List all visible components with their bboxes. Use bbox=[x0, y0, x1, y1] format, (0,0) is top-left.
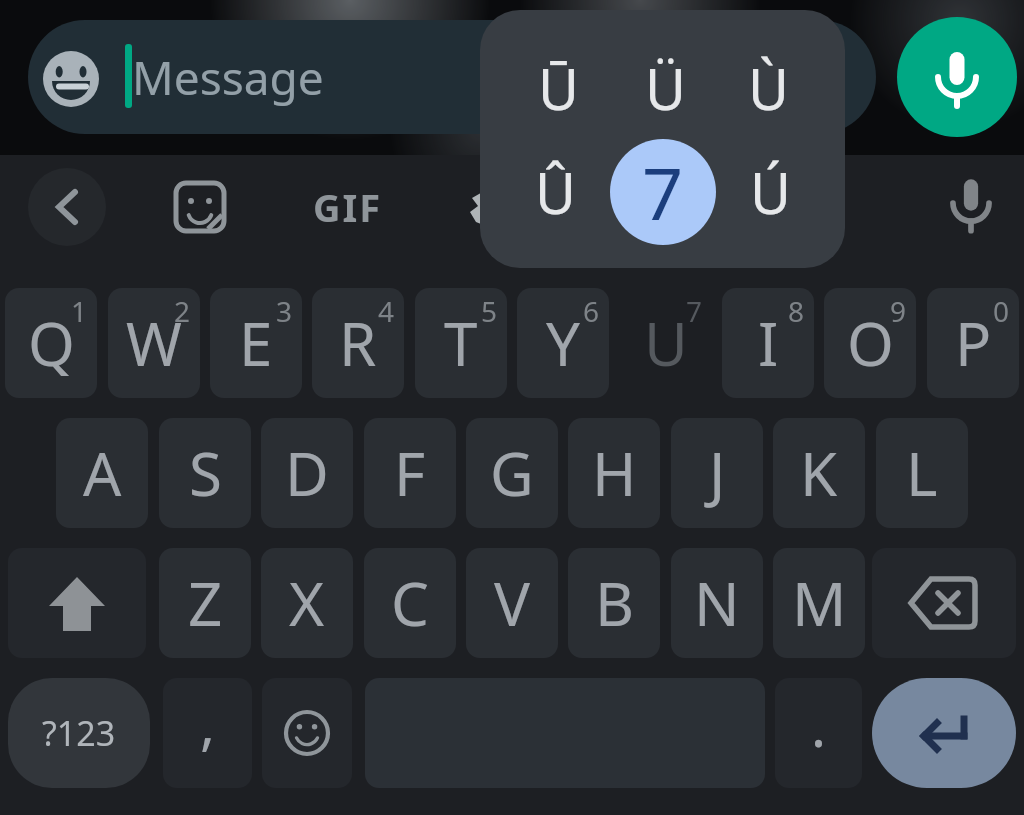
button[interactable]: Ú bbox=[730, 142, 810, 242]
staticText: N bbox=[694, 562, 740, 644]
staticText: K bbox=[800, 432, 838, 514]
button[interactable] bbox=[872, 678, 1016, 788]
staticText: 0 bbox=[993, 292, 1010, 330]
button[interactable]: B bbox=[568, 548, 660, 658]
button[interactable]: X bbox=[261, 548, 353, 658]
button[interactable] bbox=[872, 548, 1016, 658]
button[interactable] bbox=[931, 167, 1011, 247]
staticText: C bbox=[391, 562, 429, 644]
button[interactable]: S bbox=[159, 418, 251, 528]
button[interactable]: H bbox=[568, 418, 660, 528]
staticText: Û bbox=[535, 154, 576, 230]
staticText: H bbox=[592, 432, 637, 514]
staticText: G bbox=[490, 432, 534, 514]
staticText: V bbox=[494, 562, 530, 644]
button[interactable] bbox=[8, 548, 146, 658]
button[interactable]: T bbox=[415, 288, 507, 398]
button[interactable] bbox=[28, 168, 106, 246]
button[interactable]: K bbox=[773, 418, 865, 528]
button[interactable]: ?123 bbox=[8, 678, 150, 788]
button[interactable]: P bbox=[927, 288, 1019, 398]
button[interactable]: U bbox=[620, 288, 712, 398]
button[interactable]: L bbox=[876, 418, 968, 528]
button[interactable]: J bbox=[671, 418, 763, 528]
staticText: R bbox=[339, 302, 377, 384]
button[interactable]: C bbox=[364, 548, 456, 658]
button[interactable]: 7 bbox=[610, 139, 716, 245]
staticText: Ü bbox=[645, 50, 686, 126]
staticText: L bbox=[906, 432, 938, 514]
staticText: Ū bbox=[538, 50, 579, 126]
button[interactable]: , bbox=[163, 678, 252, 788]
button[interactable]: Y bbox=[517, 288, 609, 398]
button[interactable]: Û bbox=[515, 142, 595, 242]
staticText: 6 bbox=[583, 292, 600, 330]
button[interactable]: Q bbox=[5, 288, 97, 398]
button[interactable]: Ù bbox=[728, 38, 808, 138]
button[interactable]: Z bbox=[159, 548, 251, 658]
staticText: P bbox=[955, 302, 992, 384]
staticText: M bbox=[792, 562, 847, 644]
button[interactable]: G bbox=[466, 418, 558, 528]
staticText: Ù bbox=[748, 50, 789, 126]
button[interactable]: O bbox=[824, 288, 916, 398]
staticText: 2 bbox=[174, 292, 191, 330]
staticText: 4 bbox=[378, 292, 395, 330]
staticText: O bbox=[847, 302, 894, 384]
staticText: GIF bbox=[313, 181, 383, 233]
button[interactable] bbox=[897, 17, 1017, 137]
staticText: W bbox=[126, 302, 182, 384]
staticText: E bbox=[239, 302, 273, 384]
button[interactable]: V bbox=[466, 548, 558, 658]
button[interactable]: M bbox=[773, 548, 865, 658]
staticText: , bbox=[200, 685, 216, 761]
staticText: 8 bbox=[788, 292, 805, 330]
staticText: U bbox=[644, 302, 688, 384]
staticText: I bbox=[758, 302, 779, 384]
staticText: 3 bbox=[276, 292, 293, 330]
staticText: D bbox=[285, 432, 329, 514]
staticText: B bbox=[595, 562, 634, 644]
staticText: 7 bbox=[642, 143, 684, 241]
button[interactable]: A bbox=[56, 418, 148, 528]
staticText: 7 bbox=[686, 292, 703, 330]
staticText: J bbox=[709, 432, 726, 514]
staticText: S bbox=[189, 432, 222, 514]
staticText: A bbox=[83, 432, 122, 514]
staticText: Y bbox=[546, 302, 580, 384]
staticText: Ú bbox=[750, 154, 791, 230]
staticText: F bbox=[394, 432, 426, 514]
button[interactable]: R bbox=[312, 288, 404, 398]
staticText: 5 bbox=[481, 292, 498, 330]
staticText: 1 bbox=[71, 292, 88, 330]
button[interactable]: Ū bbox=[518, 38, 598, 138]
staticText: Z bbox=[188, 562, 223, 644]
staticText: ?123 bbox=[42, 710, 116, 756]
staticText: T bbox=[444, 302, 478, 384]
button[interactable]: Ü bbox=[625, 38, 705, 138]
button[interactable] bbox=[174, 181, 226, 233]
button[interactable]: I bbox=[722, 288, 814, 398]
button[interactable]: GIF bbox=[305, 178, 391, 236]
button[interactable]: . bbox=[775, 678, 862, 788]
staticText: X bbox=[289, 562, 325, 644]
button[interactable]: W bbox=[108, 288, 200, 398]
button[interactable]: F bbox=[364, 418, 456, 528]
button[interactable]: N bbox=[671, 548, 763, 658]
staticText: . bbox=[811, 687, 827, 763]
staticText: Q bbox=[28, 302, 75, 384]
button[interactable] bbox=[262, 678, 352, 788]
staticText: 9 bbox=[890, 292, 907, 330]
button[interactable]: E bbox=[210, 288, 302, 398]
button[interactable]: D bbox=[261, 418, 353, 528]
staticText: Message bbox=[132, 46, 324, 109]
button[interactable]: Message bbox=[28, 20, 876, 134]
